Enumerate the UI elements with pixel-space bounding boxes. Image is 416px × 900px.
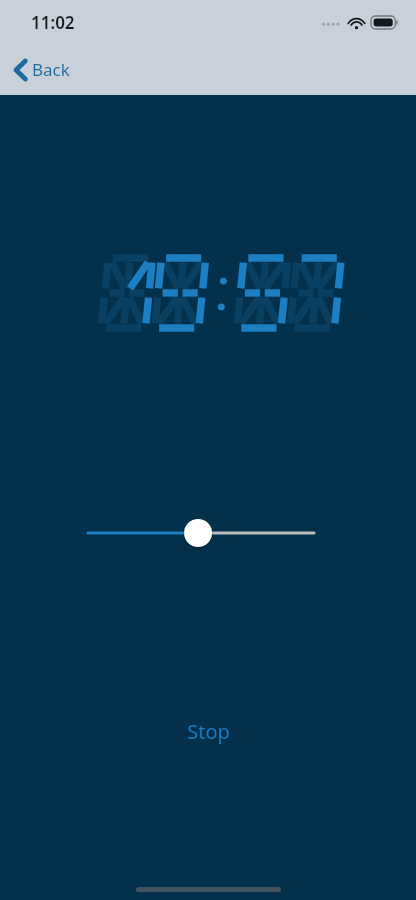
staticText: 11:02 xyxy=(31,11,75,34)
button[interactable]: Stop xyxy=(143,709,273,753)
staticText: Stop xyxy=(187,718,230,745)
button[interactable]: Brightness slider xyxy=(78,511,338,555)
staticText: Back xyxy=(32,58,70,81)
button[interactable]: Back xyxy=(8,44,76,95)
